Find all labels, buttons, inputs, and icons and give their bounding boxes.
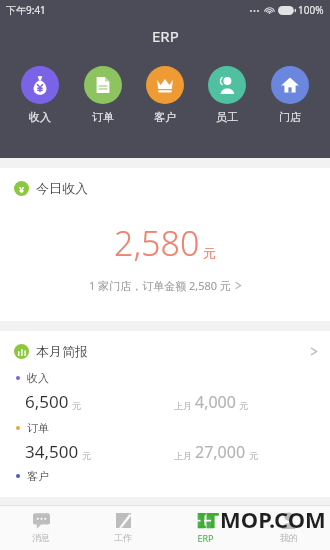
button[interactable]: 收入: [0, 363, 330, 413]
other: 员工: [217, 75, 237, 95]
staticText: 门店: [279, 110, 301, 124]
button[interactable]: 本月简报: [0, 331, 330, 363]
staticText: 消息: [32, 532, 50, 543]
other: 消息: [33, 512, 50, 529]
staticText: 我的: [280, 532, 298, 543]
other: 收入: [30, 75, 50, 95]
other: 我的: [280, 512, 297, 529]
other: 门店: [280, 75, 300, 95]
staticText: 元: [239, 400, 248, 411]
staticText: IT: [198, 504, 220, 534]
other: ERP: [197, 512, 214, 529]
staticText: 元: [249, 450, 258, 461]
staticText: 1 家门店，订单金额 2,580 元: [89, 278, 231, 293]
staticText: 27,000: [195, 441, 246, 463]
button[interactable]: 订单: [75, 64, 131, 126]
other: 工作: [115, 512, 132, 529]
other: 订单: [93, 75, 113, 95]
staticText: 上月: [174, 450, 192, 461]
button[interactable]: 门店: [262, 64, 318, 126]
staticText: 订单: [27, 421, 49, 435]
staticText: 2,580: [114, 220, 200, 266]
staticText: ¥: [19, 183, 25, 195]
staticText: 客户: [27, 469, 49, 483]
staticText: 员工: [216, 110, 238, 124]
staticText: 4,000: [195, 391, 236, 413]
button[interactable]: 我的: [247, 506, 330, 550]
staticText: 工作: [114, 532, 132, 543]
staticText: MOP.COM: [220, 504, 326, 534]
staticText: 订单: [92, 110, 114, 124]
button[interactable]: 收入: [12, 64, 68, 126]
staticText: 收入: [29, 110, 51, 124]
staticText: 上月: [174, 400, 192, 411]
staticText: 客户: [154, 110, 176, 124]
button[interactable]: 工作: [82, 506, 164, 550]
staticText: ERP: [197, 532, 214, 544]
button[interactable]: ¥: [0, 168, 330, 321]
button[interactable]: ERP: [164, 506, 247, 550]
staticText: 本月简报: [36, 343, 88, 359]
staticText: 6,500: [25, 390, 69, 413]
staticText: 元: [72, 400, 81, 411]
staticText: 34,500: [25, 440, 79, 463]
staticText: 收入: [27, 371, 49, 385]
other: 客户: [155, 75, 175, 95]
staticText: 今日收入: [36, 180, 88, 196]
staticText: 下午9:41: [6, 3, 46, 17]
button[interactable]: 订单: [0, 413, 330, 463]
staticText: 元: [203, 245, 216, 261]
button[interactable]: 消息: [0, 506, 82, 550]
staticText: ERP: [152, 26, 179, 46]
staticText: 元: [82, 450, 91, 461]
staticText: 100%: [298, 3, 324, 17]
button[interactable]: 客户: [137, 64, 193, 126]
button[interactable]: 员工: [199, 64, 255, 126]
